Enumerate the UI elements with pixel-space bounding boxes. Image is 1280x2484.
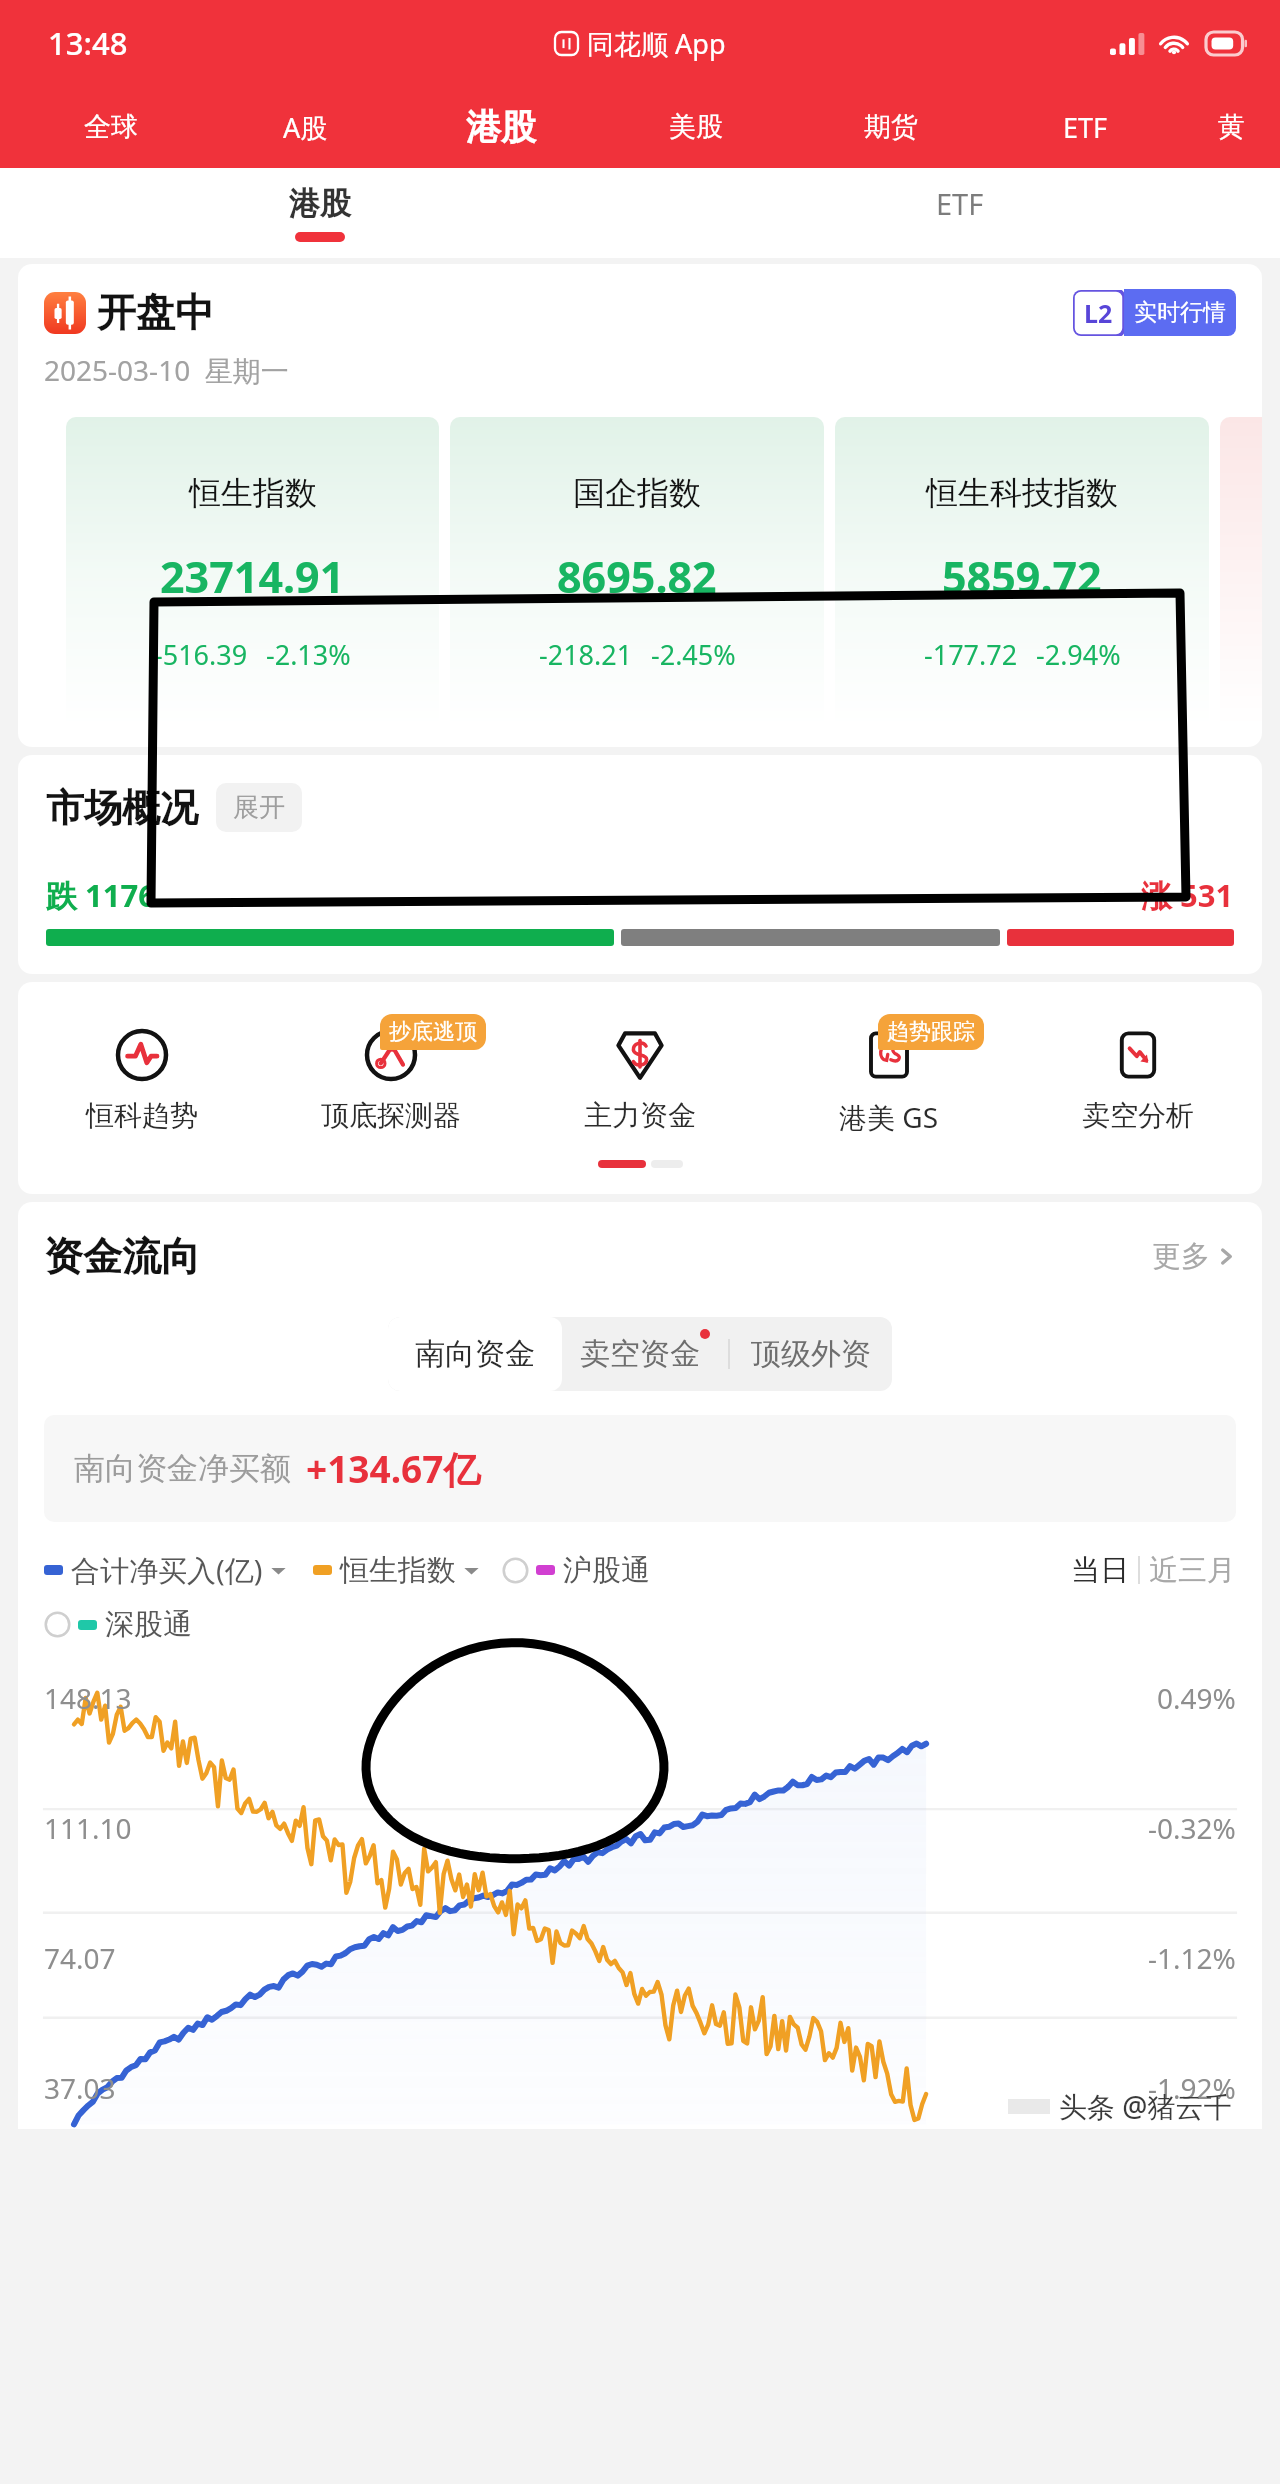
button[interactable]: 卖空资金	[562, 1317, 728, 1391]
button[interactable]: 当日	[1071, 1552, 1129, 1589]
staticText: 美股	[669, 110, 723, 144]
staticText: 港股	[466, 105, 536, 149]
staticText: 37.03	[44, 2069, 116, 2107]
staticText: 全球	[84, 110, 138, 144]
button[interactable]: 卖空分析	[1013, 1022, 1262, 1133]
button[interactable]: 近三月	[1149, 1552, 1236, 1589]
staticText: 趋势跟踪	[887, 1018, 975, 1046]
staticText: -1.92%	[1148, 2069, 1236, 2107]
staticText: 8695.82	[557, 547, 717, 606]
staticText: 74.07	[44, 1939, 116, 1977]
staticText: 南向资金	[415, 1335, 535, 1373]
button[interactable]: 恒生科技指数	[835, 417, 1209, 727]
button[interactable]: 恒科趋势	[18, 1022, 266, 1133]
staticText: 市场概况	[46, 784, 198, 832]
button[interactable]: L2	[1073, 289, 1236, 336]
staticText: -2.13%	[266, 636, 351, 673]
staticText: 更多	[1152, 1238, 1210, 1275]
staticText: 卖空资金	[580, 1335, 700, 1373]
staticText: -177.72	[924, 636, 1018, 673]
staticText: 合计净买入(亿)	[71, 1550, 263, 1590]
button[interactable]: 港股	[0, 168, 640, 258]
button[interactable]: 趋势跟踪	[764, 1022, 1013, 1136]
staticText: 恒科趋势	[86, 1098, 198, 1133]
staticText: 沪股通	[563, 1552, 650, 1589]
staticText: 涨 531	[1141, 874, 1234, 916]
button[interactable]: 期货	[793, 86, 988, 168]
staticText: 0.49%	[1157, 1679, 1236, 1717]
staticText: 跌 1176	[46, 874, 156, 916]
button[interactable]: 抄底逃顶	[266, 1022, 515, 1133]
staticText: +134.67亿	[306, 1443, 481, 1494]
staticText: L2	[1084, 296, 1113, 330]
staticText: 头条 @猪云千	[1059, 2087, 1232, 2125]
staticText: -218.21	[539, 636, 633, 673]
staticText: -516.39	[154, 636, 248, 673]
button[interactable]: 展开	[216, 783, 302, 832]
staticText: 黄	[1218, 110, 1245, 144]
staticText: 111.10	[44, 1809, 132, 1847]
staticText: 国企指数	[573, 473, 701, 513]
staticText: -2.94%	[1036, 636, 1121, 673]
staticText: -0.32%	[1148, 1809, 1236, 1847]
staticText: 主力资金	[584, 1098, 696, 1133]
staticText: 实时行情	[1134, 298, 1226, 327]
staticText: 同花顺 App	[587, 25, 726, 62]
staticText: 近三月	[1149, 1552, 1236, 1589]
button[interactable]: 南向资金净买额	[44, 1415, 1236, 1522]
button[interactable]: ETF	[988, 86, 1183, 168]
button[interactable]: 顶级外资	[730, 1317, 892, 1391]
staticText: 展开	[233, 791, 285, 824]
staticText: 抄底逃顶	[389, 1018, 477, 1046]
button[interactable]: 南向资金	[388, 1317, 562, 1391]
button[interactable]: 恒生指数	[66, 417, 439, 727]
staticText: 顶底探测器	[321, 1098, 461, 1133]
staticText: 23714.91	[160, 547, 345, 606]
staticText: 5859.72	[942, 547, 1102, 606]
staticText: 2025-03-10 星期一	[44, 351, 289, 389]
button[interactable]	[1220, 417, 1262, 727]
button[interactable]: ETF	[640, 168, 1280, 258]
staticText: 13:48	[48, 22, 128, 64]
staticText: 当日	[1071, 1552, 1129, 1589]
button[interactable]: A股	[208, 86, 403, 168]
button[interactable]: 港股	[403, 86, 598, 168]
button[interactable]: 美股	[598, 86, 793, 168]
staticText: 深股通	[105, 1606, 192, 1643]
staticText: 开盘中	[97, 288, 214, 337]
button[interactable]: 更多	[1152, 1238, 1236, 1275]
staticText: 港股	[289, 184, 351, 223]
staticText: 资金流向	[44, 1232, 200, 1281]
staticText: 南向资金净买额	[74, 1449, 291, 1488]
staticText: A股	[283, 109, 328, 146]
staticText: ETF	[1063, 109, 1108, 146]
staticText: 148.13	[44, 1679, 132, 1717]
staticText: 期货	[864, 110, 918, 144]
staticText: 恒生指数	[340, 1552, 456, 1589]
staticText: 恒生指数	[189, 473, 317, 513]
button[interactable]: 全球	[14, 86, 208, 168]
staticText: -1.12%	[1148, 1939, 1236, 1977]
staticText: 恒生科技指数	[926, 473, 1118, 513]
button[interactable]: 黄	[1183, 86, 1280, 168]
staticText: -2.45%	[651, 636, 736, 673]
staticText: ETF	[936, 184, 984, 223]
staticText: 港美 GS	[839, 1098, 939, 1136]
button[interactable]: 国企指数	[450, 417, 824, 727]
button[interactable]: 主力资金	[515, 1022, 764, 1133]
staticText: 顶级外资	[751, 1335, 871, 1373]
staticText: 卖空分析	[1082, 1098, 1194, 1133]
